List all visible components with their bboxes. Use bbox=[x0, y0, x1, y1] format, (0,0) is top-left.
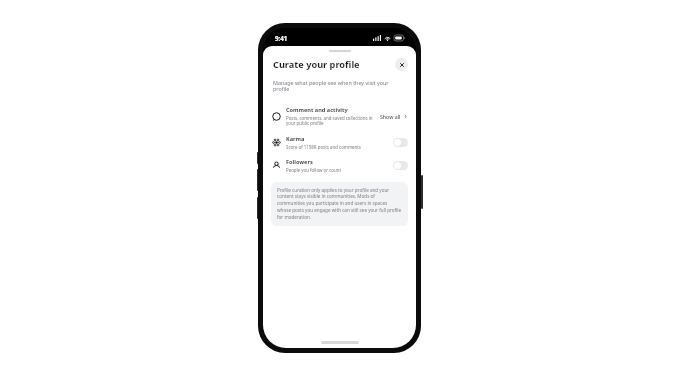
button[interactable]: Toggle bbox=[393, 138, 408, 147]
staticText: Comment and activity bbox=[286, 106, 348, 114]
button[interactable]: Toggle bbox=[393, 161, 408, 170]
staticText: Posts, comments, and saved collections i… bbox=[286, 115, 373, 127]
button[interactable]: Close bbox=[395, 58, 408, 71]
staticText: Profile curation only applies to your pr… bbox=[277, 187, 402, 221]
staticText: Followers bbox=[286, 158, 313, 166]
staticText: Manage what people see when they visit y… bbox=[273, 79, 406, 93]
button[interactable]: Followers bbox=[263, 154, 416, 177]
staticText: People you follow or count bbox=[286, 167, 341, 173]
button[interactable]: Comment and activity bbox=[263, 102, 416, 131]
staticText: Curate your profile bbox=[273, 58, 395, 71]
button[interactable]: Karma bbox=[263, 131, 416, 154]
staticText: Show all bbox=[380, 113, 401, 120]
staticText: 9:41 bbox=[275, 34, 288, 42]
button[interactable]: Show all bbox=[380, 113, 408, 120]
staticText: Karma bbox=[286, 135, 305, 143]
staticText: Score of 1158K posts and comments bbox=[286, 144, 361, 150]
